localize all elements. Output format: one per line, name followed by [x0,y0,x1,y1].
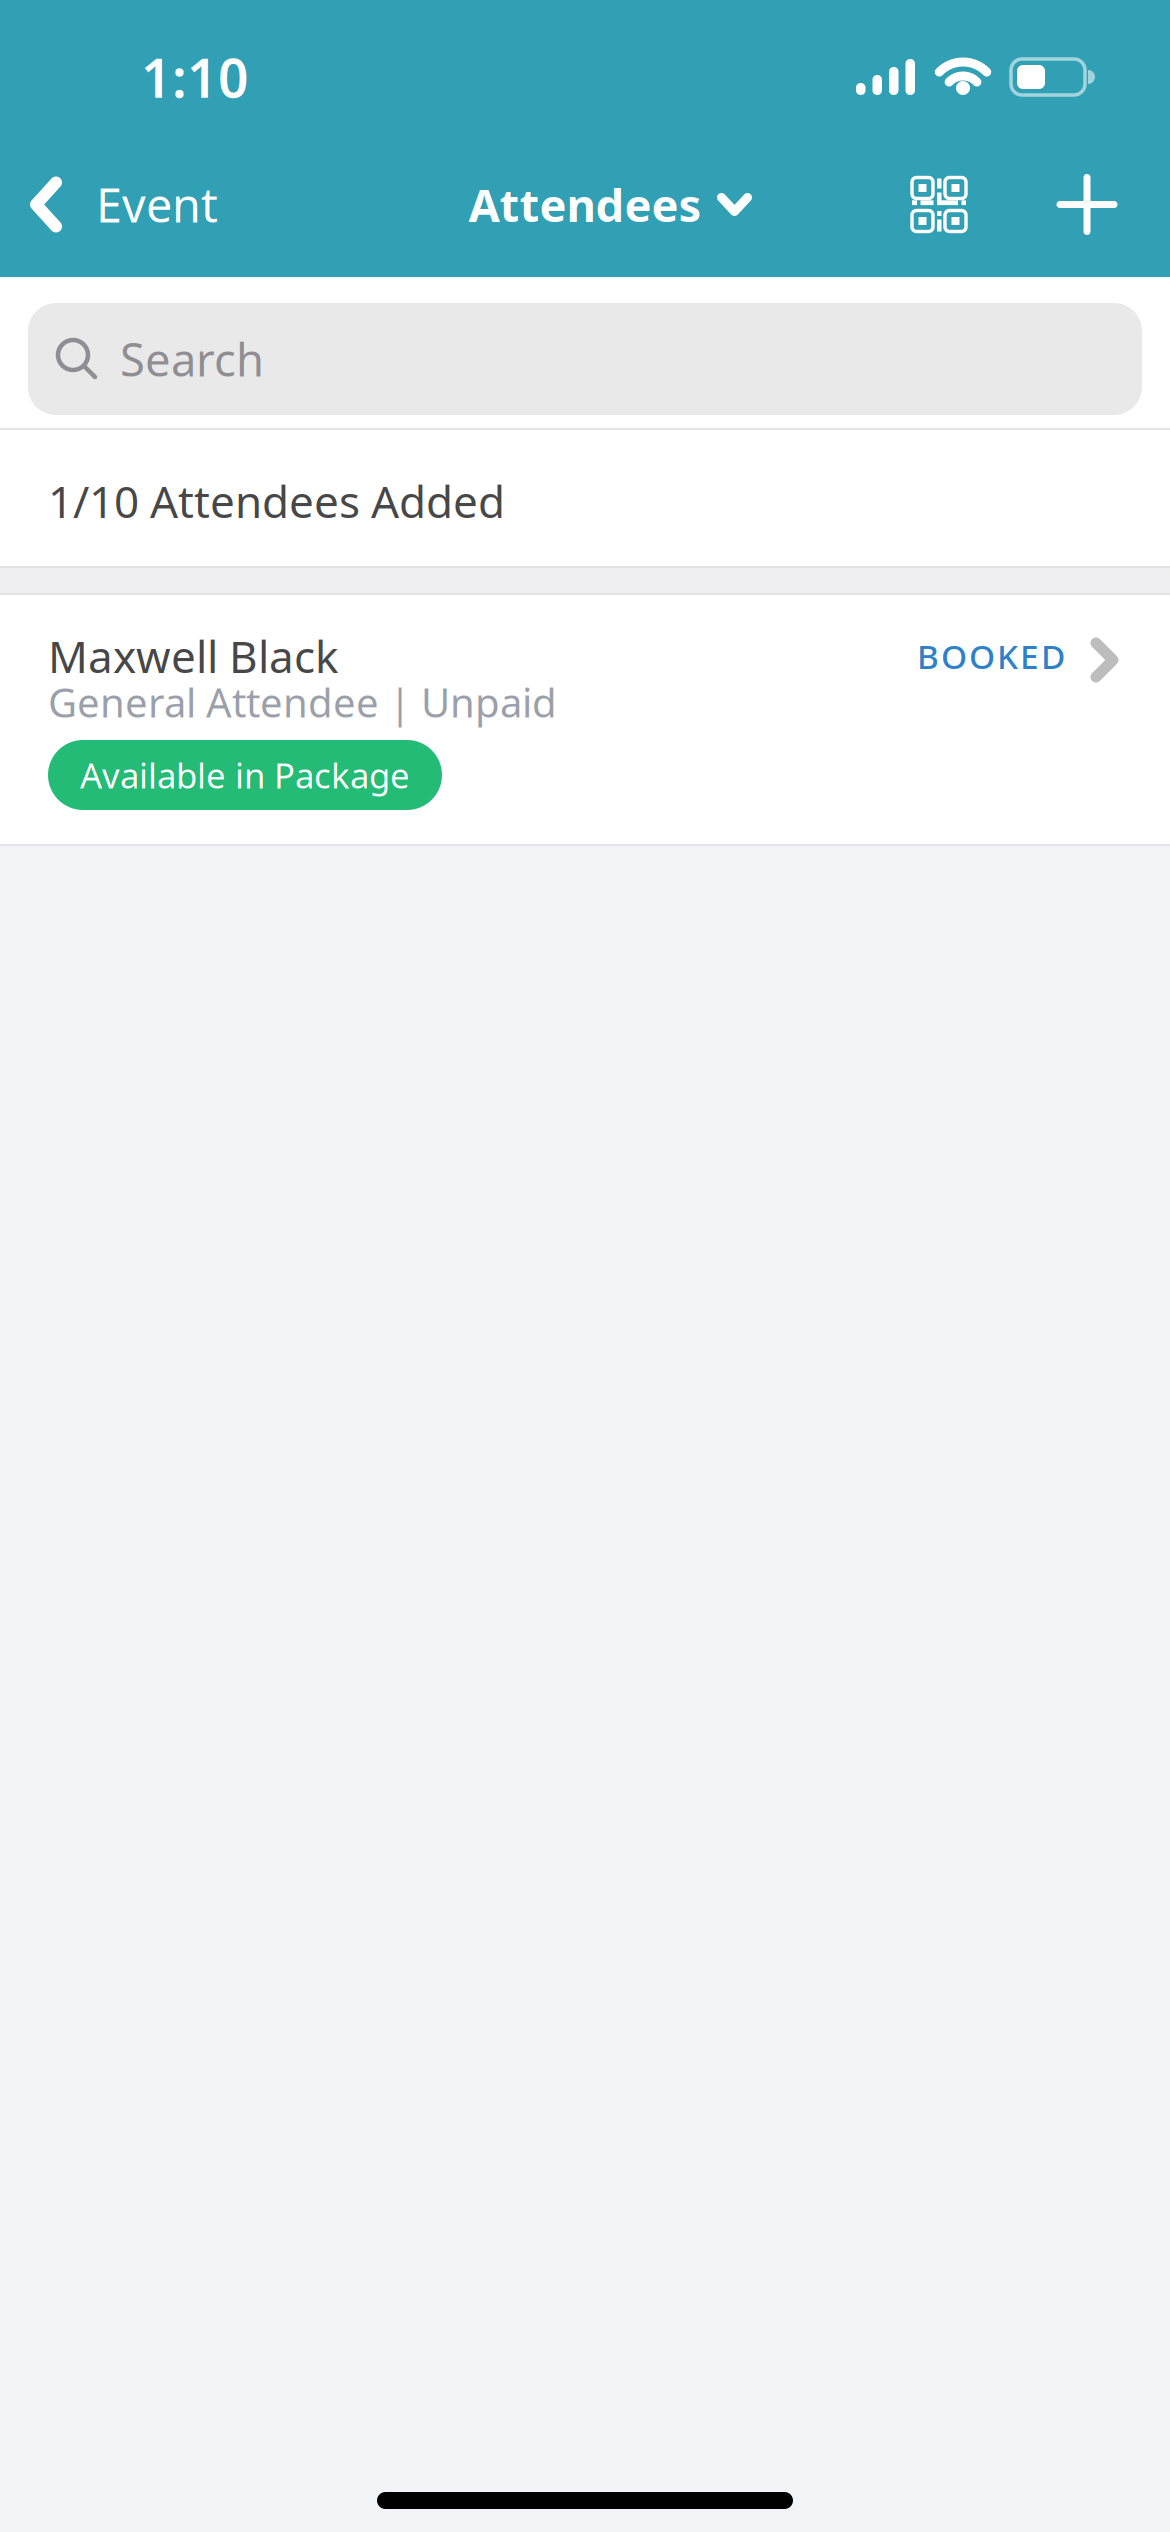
staticText: BOOKED [917,634,1065,678]
button[interactable]: Add attendee [966,177,1170,231]
button[interactable]: Scan QR code [912,177,966,231]
button[interactable]: Event [0,173,218,235]
staticText: General Attendee | Unpaid [48,675,557,728]
staticText: 1/10 Attendees Added [48,472,505,530]
staticText: 1:10 [141,42,249,112]
staticText: Maxwell Black [48,627,338,685]
staticText: Search [120,329,264,389]
staticText: Event [96,173,218,235]
staticText: Attendees [468,174,701,235]
button[interactable]: Search [28,303,1142,415]
button[interactable]: Attendees [443,174,726,235]
staticText: Available in Package [80,752,410,798]
button[interactable]: Maxwell Black [0,595,1170,844]
